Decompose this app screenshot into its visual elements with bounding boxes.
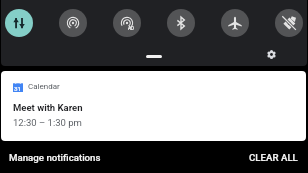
button[interactable]: 31 — [1, 71, 306, 141]
button[interactable]: Airplane mode — [221, 9, 249, 37]
staticText: 31 — [14, 85, 22, 92]
staticText: 12:30 – 1:30 pm — [13, 117, 82, 128]
button[interactable]: Manage notifications — [4, 147, 106, 168]
button[interactable]: CLEAR ALL — [244, 147, 303, 168]
button[interactable]: Settings — [263, 46, 279, 62]
button[interactable]: Hotspot AD — [113, 9, 141, 37]
button[interactable]: Hotspot — [59, 9, 87, 37]
staticText: AD — [128, 26, 135, 31]
button[interactable]: Mobile data — [5, 9, 33, 37]
button[interactable]: Bluetooth — [167, 9, 195, 37]
staticText: Calendar — [28, 82, 60, 91]
button[interactable]: Auto-rotate — [275, 9, 303, 37]
staticText: Meet with Karen — [13, 102, 83, 113]
staticText: CLEAR ALL — [249, 152, 298, 163]
staticText: Manage notifications — [9, 152, 101, 163]
